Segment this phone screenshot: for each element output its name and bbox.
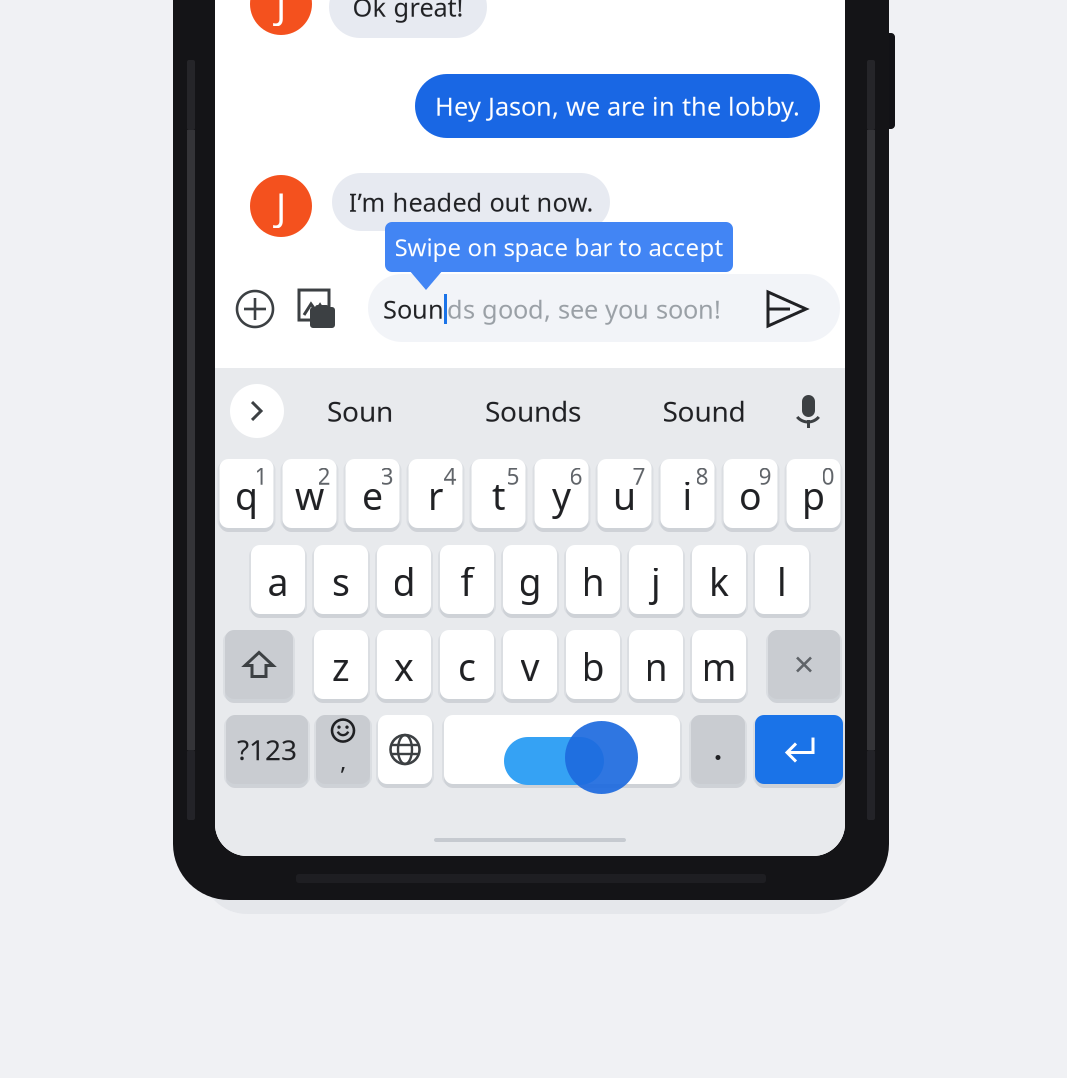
button[interactable]: Period	[691, 715, 745, 784]
staticText: ds good, see you soon!	[447, 292, 721, 326]
staticText: t	[492, 471, 505, 520]
button[interactable]: Backspace	[768, 630, 840, 699]
staticText: 2	[317, 461, 330, 491]
button[interactable]: More suggestions	[229, 383, 285, 439]
button[interactable]: Send	[761, 275, 813, 343]
staticText: v	[520, 642, 539, 691]
staticText: Hey Jason, we are in the lobby.	[435, 89, 800, 123]
staticText: s	[332, 557, 350, 606]
button[interactable]: 4	[408, 459, 462, 528]
staticText: l	[777, 557, 787, 606]
button[interactable]: n	[629, 630, 683, 699]
staticText: Sound	[662, 392, 745, 430]
button[interactable]: m	[692, 630, 746, 699]
button[interactable]: Voice input	[788, 383, 828, 439]
button[interactable]: Space	[444, 715, 680, 784]
staticText: x	[394, 642, 414, 691]
staticText: k	[709, 557, 729, 606]
button[interactable]: b	[566, 630, 620, 699]
staticText: Swipe on space bar to accept	[394, 231, 723, 263]
button[interactable]: g	[503, 545, 557, 614]
button[interactable]: k	[692, 545, 746, 614]
button[interactable]: Enter	[755, 715, 843, 784]
staticText: w	[295, 471, 324, 520]
button[interactable]: 7	[597, 459, 651, 528]
staticText: 5	[506, 461, 519, 491]
button[interactable]: h	[566, 545, 620, 614]
staticText: o	[739, 471, 762, 520]
button[interactable]: 9	[723, 459, 777, 528]
staticText: Sounds	[485, 392, 581, 430]
button[interactable]: d	[377, 545, 431, 614]
button[interactable]: l	[755, 545, 809, 614]
button[interactable]: z	[314, 630, 368, 699]
staticText: 3	[380, 461, 393, 491]
staticText: p	[802, 471, 825, 520]
button[interactable]: s	[314, 545, 368, 614]
staticText: ?123	[237, 731, 297, 768]
staticText: J	[276, 0, 286, 29]
staticText: 7	[632, 461, 645, 491]
staticText: Soun	[327, 392, 393, 430]
staticText: q	[235, 471, 258, 520]
staticText: m	[701, 642, 736, 691]
staticText: b	[581, 642, 604, 691]
button[interactable]: Photos	[292, 275, 344, 343]
staticText: 1	[254, 461, 267, 491]
button[interactable]: 5	[471, 459, 525, 528]
button[interactable]: c	[440, 630, 494, 699]
staticText: 8	[695, 461, 708, 491]
button[interactable]: a	[251, 545, 305, 614]
staticText: n	[644, 642, 667, 691]
staticText: h	[581, 557, 604, 606]
staticText: I’m headed out now.	[348, 185, 593, 219]
button[interactable]: 2	[282, 459, 336, 528]
button[interactable]: Add	[229, 275, 281, 343]
button[interactable]: Emoji	[316, 715, 370, 784]
staticText: J	[276, 181, 286, 231]
staticText: i	[682, 471, 692, 520]
staticText: a	[267, 557, 288, 606]
staticText: e	[362, 471, 383, 520]
button[interactable]: j	[629, 545, 683, 614]
button[interactable]: v	[503, 630, 557, 699]
staticText: g	[518, 557, 541, 606]
button[interactable]: f	[440, 545, 494, 614]
staticText: ,	[340, 745, 346, 776]
staticText: Soun	[383, 292, 444, 326]
staticText: f	[460, 557, 473, 606]
button[interactable]: x	[377, 630, 431, 699]
staticText: r	[428, 471, 443, 520]
staticText: 9	[758, 461, 771, 491]
staticText: u	[613, 471, 636, 520]
staticText: 4	[443, 461, 456, 491]
staticText: z	[332, 642, 350, 691]
staticText: c	[458, 642, 476, 691]
staticText: j	[651, 557, 661, 606]
button[interactable]: Symbols	[226, 715, 308, 784]
staticText: Ok great!	[352, 0, 463, 24]
button[interactable]: Shift	[225, 630, 293, 699]
button[interactable]: 3	[345, 459, 399, 528]
button[interactable]: 0	[786, 459, 840, 528]
button[interactable]: 8	[660, 459, 714, 528]
staticText: y	[552, 471, 571, 520]
button[interactable]: 6	[534, 459, 588, 528]
staticText: d	[392, 557, 415, 606]
button[interactable]: Change language	[378, 715, 432, 784]
staticText: 6	[569, 461, 582, 491]
button[interactable]: 1	[219, 459, 273, 528]
staticText: 0	[821, 461, 834, 491]
